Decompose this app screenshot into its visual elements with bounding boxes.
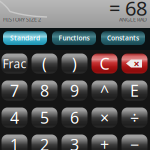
button[interactable]: − (121, 134, 147, 150)
staticText: ANGLE RAD (119, 16, 147, 23)
staticText: = 68 (109, 0, 147, 21)
staticText: HISTORY SIZE 2 (3, 16, 41, 23)
button[interactable]: 3 (61, 134, 87, 150)
staticText: 4 (10, 107, 19, 128)
staticText: 7 (10, 80, 19, 101)
button[interactable]: ^ (91, 80, 117, 100)
button[interactable]: 4 (1, 107, 27, 127)
staticText: Standard (10, 34, 40, 42)
staticText: 2 (40, 134, 49, 150)
button[interactable]: Standard (3, 31, 47, 45)
staticText: ) (72, 53, 77, 74)
staticText: ÷ (130, 107, 139, 128)
staticText: 9 (70, 80, 79, 101)
button[interactable]: 6 (61, 107, 87, 127)
staticText: 3 (70, 134, 79, 150)
button[interactable]: × (91, 107, 117, 127)
staticText: ^ (100, 80, 109, 101)
button[interactable]: Functions (52, 31, 96, 45)
staticText: 8 (40, 80, 49, 101)
staticText: C (99, 53, 109, 74)
staticText: × (133, 56, 139, 71)
staticText: + (100, 134, 109, 150)
button[interactable]: 1 (1, 134, 27, 150)
staticText: Functions (58, 34, 89, 42)
button[interactable]: ) (61, 53, 87, 73)
button[interactable]: Constants (101, 31, 145, 45)
staticText: 1 (10, 134, 19, 150)
staticText: 6 (70, 107, 79, 128)
button[interactable]: 9 (61, 80, 87, 100)
button[interactable]: 5 (31, 107, 57, 127)
staticText: 5 (40, 107, 49, 128)
staticText: − (130, 134, 139, 150)
button[interactable]: Frac (1, 53, 27, 73)
button[interactable]: ( (31, 53, 57, 73)
button[interactable]: + (91, 134, 117, 150)
button[interactable]: E (121, 80, 147, 100)
button[interactable]: 8 (31, 80, 57, 100)
button[interactable]: ÷ (121, 107, 147, 127)
staticText: × (100, 107, 109, 128)
button[interactable]: Delete (121, 53, 147, 73)
staticText: ( (42, 53, 47, 74)
button[interactable]: 7 (1, 80, 27, 100)
staticText: Constants (107, 34, 139, 42)
button[interactable]: C (91, 53, 117, 73)
staticText: E (130, 80, 139, 101)
staticText: Frac (2, 55, 26, 71)
button[interactable]: 2 (31, 134, 57, 150)
